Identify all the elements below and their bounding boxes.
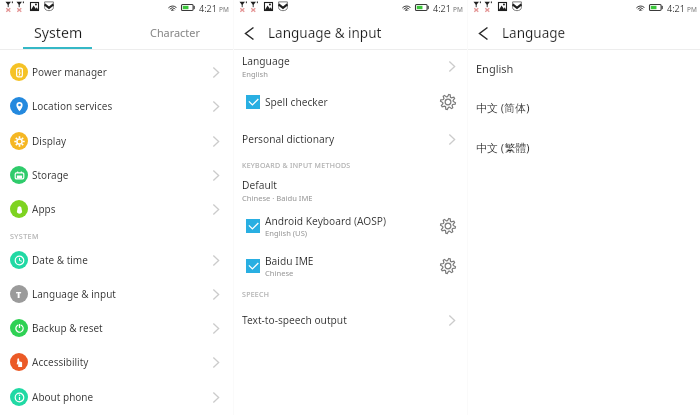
staticText: 中文 (简体) <box>476 100 530 115</box>
staticText: Language <box>502 24 566 42</box>
button[interactable]: Default <box>234 176 467 204</box>
button[interactable]: 中文 (简体) <box>468 96 700 118</box>
button[interactable]: Accessibility <box>0 350 233 374</box>
button[interactable]: Location services <box>0 94 233 118</box>
staticText: Language & input <box>32 287 116 301</box>
staticText: English (US) <box>265 228 308 238</box>
staticText: SPEECH <box>242 290 270 300</box>
staticText: PM <box>687 5 697 14</box>
button[interactable]: Spell checker <box>234 89 467 115</box>
staticText: About phone <box>32 390 94 404</box>
button[interactable]: Settings <box>437 255 459 277</box>
button[interactable]: Storage <box>0 163 233 187</box>
staticText: Language <box>242 54 290 68</box>
staticText: Default <box>242 178 278 192</box>
button[interactable]: Back <box>237 21 261 45</box>
staticText: Display <box>32 134 67 148</box>
staticText: Baidu IME <box>265 254 314 268</box>
staticText: PM <box>219 5 229 14</box>
button[interactable]: Character <box>127 19 222 45</box>
staticText: Chinese <box>265 268 294 278</box>
staticText: 4:21 <box>667 2 685 14</box>
staticText: Location services <box>32 99 113 113</box>
button[interactable]: Settings <box>437 91 459 113</box>
button[interactable]: Power manager <box>0 60 233 84</box>
button[interactable]: T <box>0 282 233 306</box>
button[interactable]: 中文 (繁體) <box>468 136 700 158</box>
button[interactable]: Display <box>0 129 233 153</box>
staticText: PM <box>453 5 463 14</box>
staticText: Text-to-speech output <box>242 313 347 327</box>
button[interactable]: Apps <box>0 197 233 221</box>
staticText: Character <box>150 25 200 40</box>
button[interactable]: Settings <box>437 215 459 237</box>
button[interactable]: Language <box>234 52 467 80</box>
staticText: English <box>242 69 268 79</box>
staticText: Apps <box>32 202 56 216</box>
staticText: 中文 (繁體) <box>476 140 530 155</box>
staticText: Personal dictionary <box>242 132 335 146</box>
staticText: Storage <box>32 168 69 182</box>
staticText: Language & input <box>268 24 382 42</box>
button[interactable]: Personal dictionary <box>234 129 467 149</box>
staticText: English <box>476 61 514 76</box>
button[interactable]: Android Keyboard (AOSP) <box>234 213 467 239</box>
staticText: T <box>16 288 22 300</box>
button[interactable]: Back <box>471 21 495 45</box>
button[interactable]: Baidu IME <box>234 253 467 279</box>
staticText: SYSTEM <box>10 231 39 241</box>
staticText: System <box>34 23 83 42</box>
button[interactable]: Backup & reset <box>0 316 233 340</box>
button[interactable]: About phone <box>0 385 233 409</box>
button[interactable]: English <box>468 57 700 79</box>
staticText: Spell checker <box>265 95 328 109</box>
staticText: Android Keyboard (AOSP) <box>265 214 387 228</box>
staticText: KEYBOARD & INPUT METHODS <box>242 161 351 171</box>
staticText: Date & time <box>32 253 88 267</box>
staticText: Accessibility <box>32 355 89 369</box>
staticText: Power manager <box>32 65 107 79</box>
staticText: Chinese · Baidu IME <box>242 193 313 203</box>
staticText: Backup & reset <box>32 321 103 335</box>
staticText: 4:21 <box>199 2 217 14</box>
button[interactable]: Text-to-speech output <box>234 310 467 330</box>
button[interactable]: System <box>11 19 105 45</box>
staticText: 4:21 <box>433 2 451 14</box>
button[interactable]: Date & time <box>0 248 233 272</box>
